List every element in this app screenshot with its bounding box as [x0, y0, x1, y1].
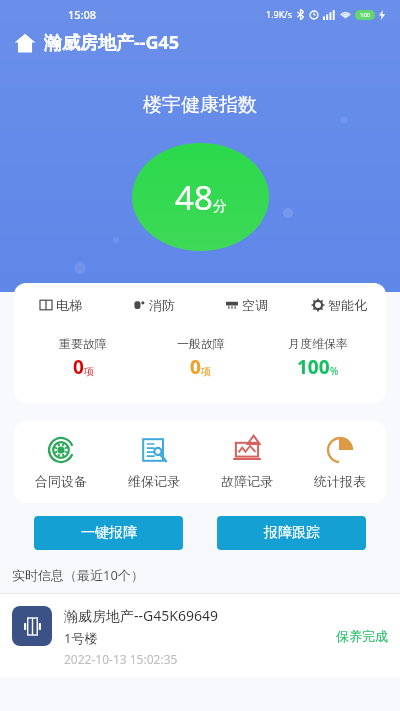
button[interactable]: 重要故障 — [24, 336, 142, 380]
staticText: 100 — [297, 354, 330, 380]
staticText: 报障跟踪 — [264, 524, 320, 542]
staticText: 100 — [360, 11, 371, 19]
staticText: 0 — [73, 354, 84, 380]
staticText: 楼宇健康指数 — [143, 93, 257, 117]
staticText: 项 — [201, 365, 211, 378]
staticText: 一般故障 — [177, 336, 225, 351]
staticText: 维保记录 — [128, 473, 180, 489]
staticText: 统计报表 — [314, 473, 366, 489]
button[interactable]: 报障跟踪 — [217, 516, 366, 550]
staticText: 智能化 — [328, 297, 367, 313]
staticText: 瀚威房地产--G45K69649 — [64, 606, 218, 625]
button[interactable]: 月度维保率 — [259, 336, 376, 380]
button[interactable]: 消防 — [107, 293, 200, 317]
staticText: 保养完成 — [336, 628, 388, 644]
staticText: 实时信息（最近10个） — [12, 566, 144, 584]
staticText: 一键报障 — [81, 524, 137, 542]
staticText: 项 — [84, 365, 94, 378]
staticText: 分 — [213, 198, 227, 216]
button[interactable]: 一般故障 — [142, 336, 259, 380]
button[interactable]: 空调 — [200, 293, 293, 317]
staticText: 合同设备 — [35, 473, 87, 489]
staticText: 2022-10-13 15:02:35 — [64, 651, 178, 667]
staticText: 消防 — [149, 297, 175, 313]
button[interactable]: 合同设备 — [14, 435, 107, 489]
button[interactable]: 统计报表 — [293, 435, 386, 489]
staticText: 故障记录 — [221, 473, 273, 489]
staticText: 1号楼 — [64, 629, 98, 647]
button[interactable]: 瀚威房地产--G45K69649 — [0, 594, 400, 677]
staticText: 空调 — [242, 297, 268, 313]
staticText: 48 — [175, 175, 213, 220]
staticText: 15:08 — [68, 7, 97, 22]
staticText: 1.9K/s — [266, 8, 292, 20]
button[interactable]: 智能化 — [293, 293, 386, 317]
button[interactable]: 故障记录 — [200, 435, 293, 489]
staticText: % — [330, 364, 339, 378]
button[interactable]: 维保记录 — [107, 435, 200, 489]
staticText: 瀚威房地产--G45 — [44, 30, 180, 55]
staticText: 电梯 — [56, 297, 82, 313]
staticText: 月度维保率 — [288, 336, 348, 351]
staticText: 0 — [190, 354, 201, 380]
staticText: 重要故障 — [59, 336, 107, 351]
button[interactable]: 电梯 — [14, 293, 107, 317]
button[interactable]: 一键报障 — [34, 516, 183, 550]
